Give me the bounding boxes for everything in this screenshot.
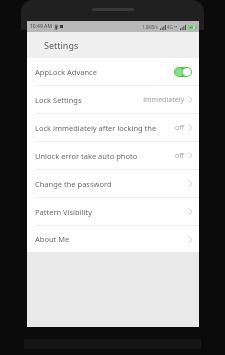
staticText: •• (174, 24, 178, 30)
staticText: AppLock Advance (35, 67, 174, 77)
staticText: 4G (167, 24, 173, 30)
button[interactable]: About Me (27, 226, 199, 252)
button[interactable]: Lock Settings (27, 86, 199, 113)
button[interactable]: Change the password (27, 170, 199, 197)
staticText: Settings (44, 39, 79, 51)
staticText: Pattern Visibility (35, 207, 188, 217)
button[interactable]: Lock immediately after locking the scree… (27, 114, 199, 141)
staticText: 1.0KB/s (142, 24, 158, 30)
button[interactable]: Unlock error take auto photo (27, 142, 199, 169)
staticText: Lock Settings (35, 95, 143, 105)
button[interactable]: AppLock Advance toggle, on (174, 67, 192, 77)
button[interactable]: Pattern Visibility (27, 198, 199, 225)
staticText: Lock immediately after locking the scree… (35, 123, 174, 133)
staticText: Unlock error take auto photo (35, 151, 174, 161)
staticText: off (174, 151, 184, 161)
button[interactable]: AppLock Advance (27, 58, 199, 85)
staticText: off (174, 123, 184, 133)
staticText: About Me (35, 234, 188, 244)
staticText: immediately (143, 95, 184, 105)
staticText: 10:49 AM (30, 23, 52, 30)
staticText: Change the password (35, 179, 188, 189)
